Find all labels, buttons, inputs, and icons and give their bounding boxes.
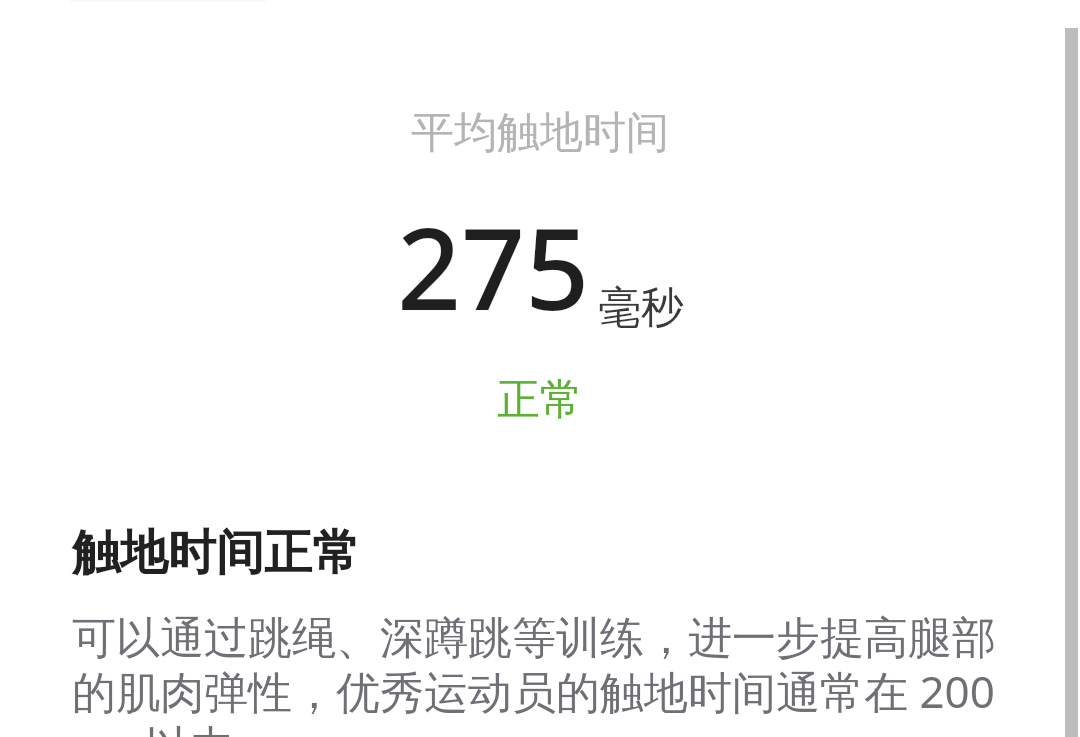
staticText: 触地时间正常 <box>72 523 360 583</box>
staticText: 正常 <box>497 373 583 427</box>
staticText: 可以通过跳绳、深蹲跳等训练，进一步提高腿部的肌肉弹性，优秀运动员的触地时间通常在… <box>72 611 1002 737</box>
button[interactable]: 正常 <box>0 373 1080 427</box>
button[interactable]: 275 <box>0 190 1080 343</box>
button[interactable]: 触地时间正常 <box>72 523 1002 737</box>
staticText: 平均触地时间 <box>411 106 669 160</box>
button[interactable]: 平均触地时间 <box>0 106 1080 160</box>
staticText: 毫秒 <box>598 281 684 335</box>
staticText: 275 <box>397 190 590 343</box>
